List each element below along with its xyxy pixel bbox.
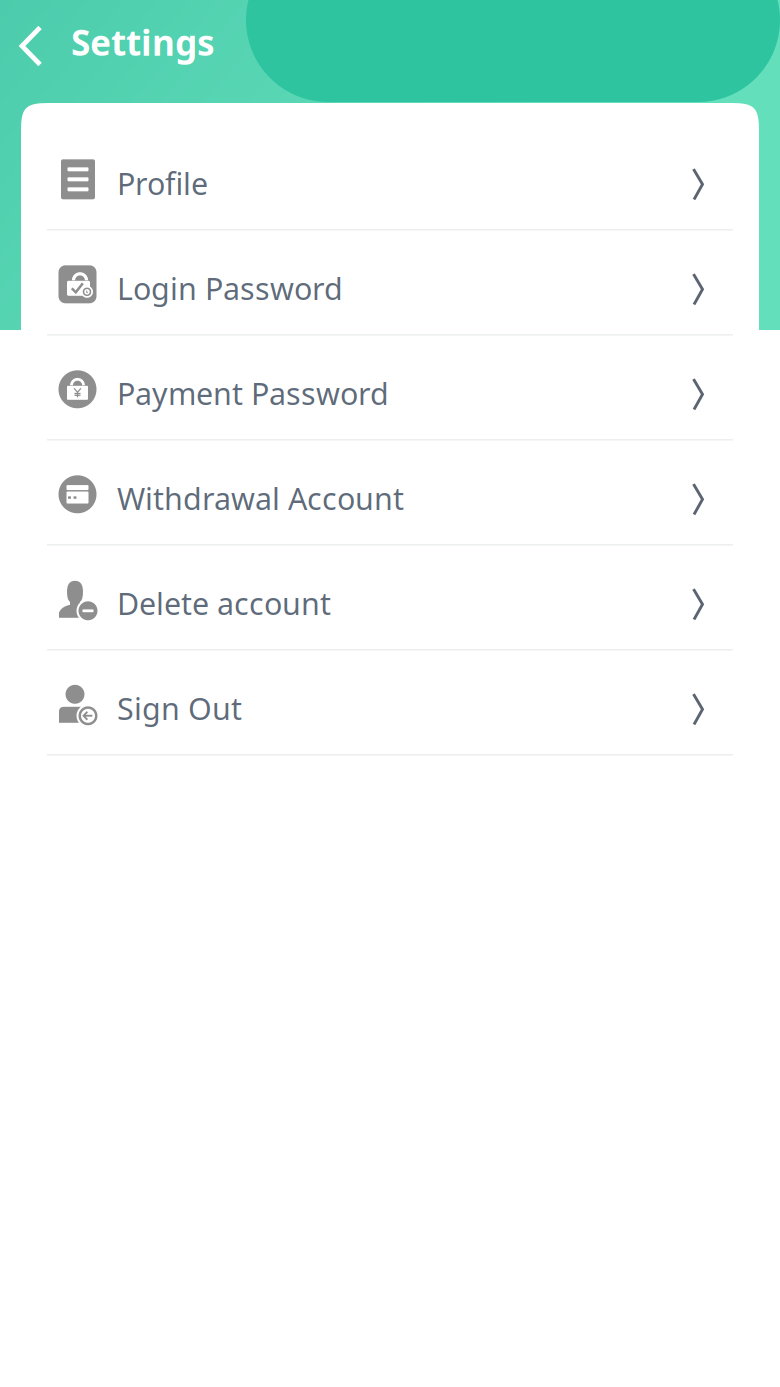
- staticText: Payment Password: [117, 373, 389, 414]
- button[interactable]: Sign Out: [21, 651, 759, 754]
- button[interactable]: Delete account: [21, 546, 759, 649]
- staticText: Sign Out: [117, 688, 242, 729]
- staticText: Delete account: [117, 583, 331, 624]
- staticText: Settings: [71, 18, 215, 66]
- button[interactable]: Profile: [21, 126, 759, 229]
- button[interactable]: Back: [0, 15, 71, 77]
- button[interactable]: Withdrawal Account: [21, 441, 759, 544]
- staticText: Login Password: [117, 268, 343, 309]
- staticText: Withdrawal Account: [117, 478, 404, 519]
- button[interactable]: Payment Password: [21, 336, 759, 439]
- staticText: Profile: [117, 163, 208, 204]
- button[interactable]: Login Password: [21, 231, 759, 334]
